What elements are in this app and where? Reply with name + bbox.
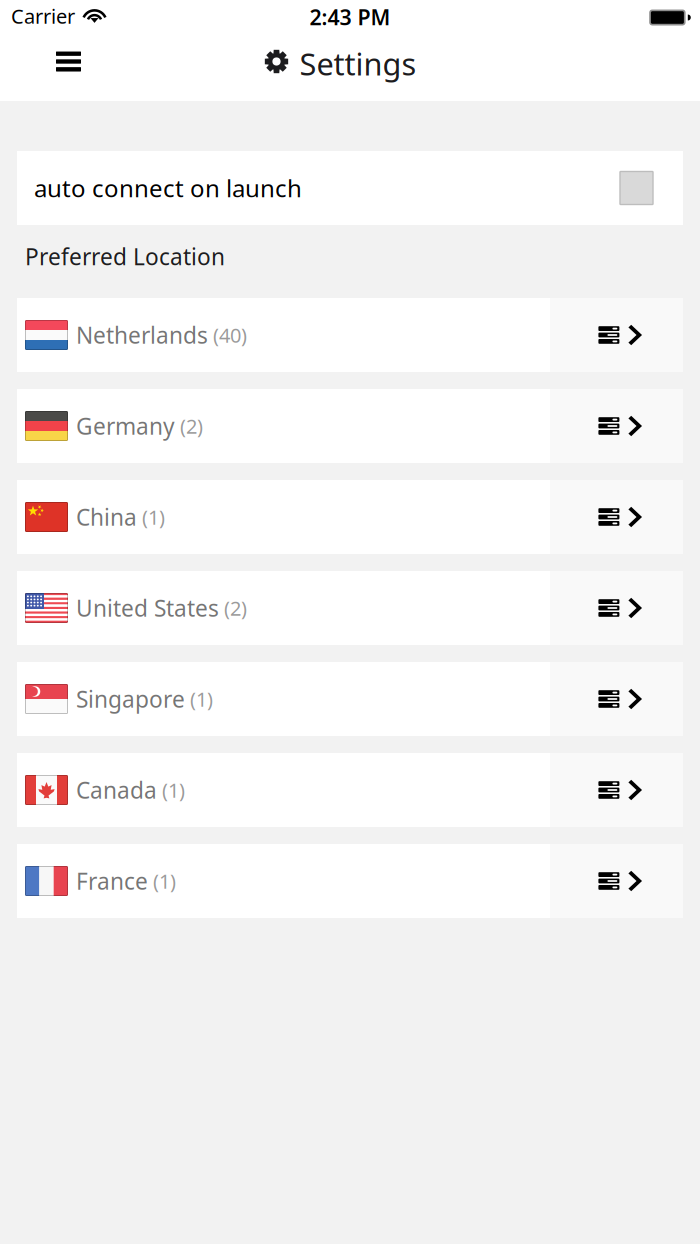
staticText: (2) [180, 413, 203, 439]
staticText: (2) [224, 595, 247, 621]
button[interactable]: Netherlands [17, 298, 683, 372]
staticText: Germany [76, 411, 175, 441]
button[interactable]: France [17, 844, 683, 918]
button[interactable]: Germany [17, 389, 683, 463]
staticText: Carrier [11, 3, 75, 29]
staticText: United States [76, 593, 219, 623]
staticText: auto connect on launch [34, 172, 302, 204]
staticText: Preferred Location [25, 241, 225, 271]
button[interactable]: auto connect on launch [17, 151, 683, 225]
staticText: France [76, 866, 148, 896]
staticText: Settings [299, 43, 416, 84]
staticText: (40) [213, 322, 247, 348]
staticText: Singapore [76, 684, 185, 714]
button[interactable]: Canada [17, 753, 683, 827]
button[interactable]: United States [17, 571, 683, 645]
button[interactable]: Menu [40, 46, 97, 94]
staticText: (1) [142, 504, 165, 530]
button[interactable]: Singapore [17, 662, 683, 736]
staticText: 2:43 PM [309, 3, 390, 31]
staticText: (1) [190, 686, 213, 712]
staticText: China [76, 502, 137, 532]
staticText: (1) [153, 868, 176, 894]
staticText: Netherlands [76, 320, 208, 350]
staticText: Canada [76, 775, 157, 805]
staticText: (1) [162, 777, 185, 803]
button[interactable]: China [17, 480, 683, 554]
